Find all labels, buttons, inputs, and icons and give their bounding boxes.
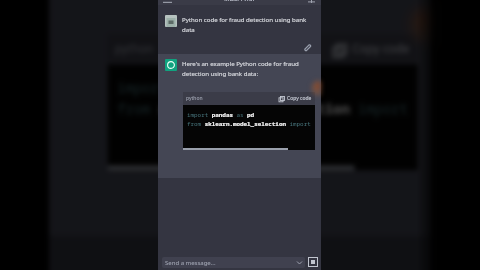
staticText: Python code for fraud detection using ba…	[182, 15, 310, 33]
staticText: import pandas as pd	[117, 79, 277, 97]
button[interactable]: Python code for fraud detection using ba…	[158, 5, 321, 54]
staticText: python	[186, 95, 203, 102]
staticText: from sklearn.model_selection import tr	[187, 120, 315, 128]
staticText: python	[115, 41, 155, 57]
staticText: Here's an example Python code for fraud …	[182, 59, 310, 77]
staticText: Copy code	[352, 41, 411, 57]
staticText: Copy code	[287, 95, 312, 102]
button[interactable]: Edit message	[303, 42, 312, 51]
button[interactable]: Send a message...	[162, 257, 305, 268]
button[interactable]: Copy code	[279, 95, 312, 102]
button[interactable]: Copy code	[333, 41, 411, 57]
button[interactable]: New chat	[158, 0, 321, 5]
button[interactable]: Send	[308, 257, 318, 267]
staticText: from sklearn.model_selection import tr	[117, 100, 418, 119]
staticText: import pandas as pd	[187, 111, 255, 119]
staticText: New chat	[224, 0, 256, 1]
staticText: Send a message...	[165, 259, 216, 267]
